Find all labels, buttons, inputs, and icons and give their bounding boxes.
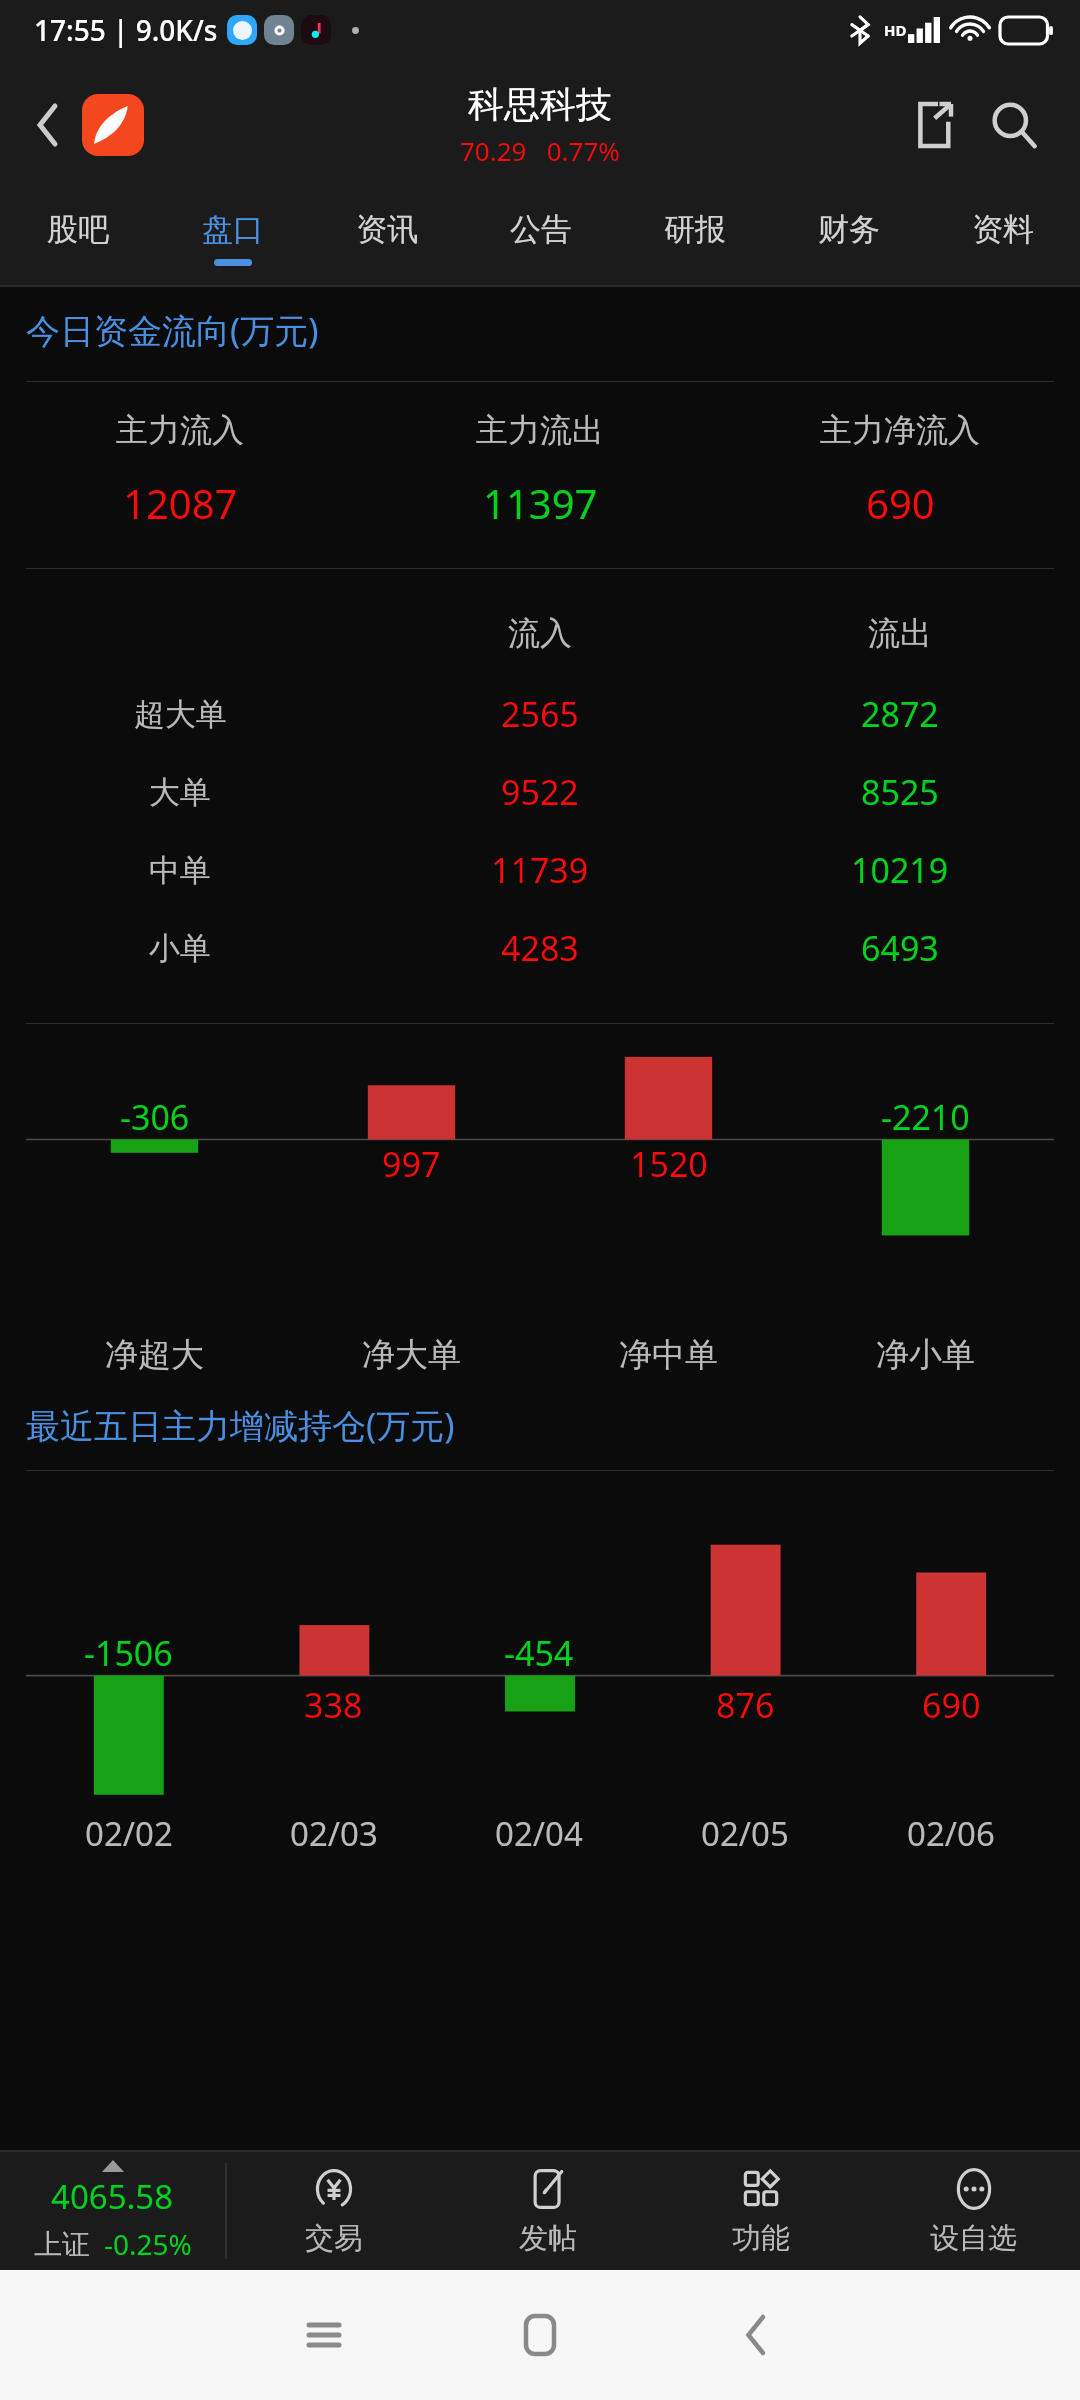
staticText: 大单	[149, 773, 211, 812]
staticText: 876	[716, 1682, 775, 1728]
staticText: 1520	[630, 1141, 708, 1187]
staticText: 4283	[501, 925, 579, 971]
staticText: 上证	[34, 2227, 90, 2262]
staticText: 公告	[510, 210, 572, 249]
button[interactable]: 中单	[0, 831, 1080, 909]
staticText: 研报	[664, 210, 726, 249]
button[interactable]: 股吧	[0, 190, 155, 285]
button[interactable]: Home	[432, 2270, 648, 2400]
button[interactable]: 超大单	[0, 675, 1080, 753]
staticText: 2565	[501, 691, 579, 737]
staticText: 最近五日主力增减持仓(万元)	[26, 1402, 455, 1448]
staticText: 4065.58	[51, 2174, 174, 2219]
staticText: 2872	[861, 691, 939, 737]
button[interactable]: Back	[20, 97, 76, 153]
staticText: 997	[382, 1141, 441, 1187]
button[interactable]: Search	[976, 87, 1052, 163]
staticText: 功能	[732, 2220, 790, 2257]
staticText: 资讯	[356, 210, 418, 249]
staticText: 12087	[123, 476, 238, 530]
button[interactable]: 盘口	[155, 190, 310, 285]
button[interactable]: 功能	[654, 2152, 867, 2270]
button[interactable]: 资料	[926, 190, 1080, 285]
button[interactable]: Back	[648, 2270, 864, 2400]
button[interactable]: 发帖	[441, 2152, 654, 2270]
button[interactable]: 小单	[0, 909, 1080, 987]
button[interactable]: App logo	[82, 94, 144, 156]
staticText: 财务	[818, 210, 880, 249]
staticText: 主力流入	[116, 410, 244, 450]
button[interactable]: 研报	[618, 190, 772, 285]
staticText: 690	[866, 476, 935, 530]
staticText: 02/06	[907, 1811, 995, 1856]
button[interactable]: 交易	[227, 2152, 441, 2270]
staticText: 主力净流入	[820, 410, 980, 450]
button[interactable]: Share	[898, 89, 970, 161]
staticText: 设自选	[930, 2220, 1017, 2257]
staticText: 338	[304, 1682, 363, 1728]
staticText: 流入	[508, 613, 572, 653]
staticText: 02/03	[290, 1811, 378, 1856]
staticText: 流出	[868, 613, 932, 653]
button[interactable]: Recents	[216, 2270, 432, 2400]
staticText: 今日资金流向(万元)	[26, 307, 319, 353]
button[interactable]: 大单	[0, 753, 1080, 831]
staticText: 11397	[483, 476, 598, 530]
staticText: 02/05	[701, 1811, 789, 1856]
staticText: 690	[922, 1682, 981, 1728]
staticText: 净小单	[876, 1334, 975, 1376]
staticText: 02/02	[85, 1811, 173, 1856]
staticText: 盘口	[202, 210, 264, 249]
staticText: 资料	[972, 210, 1034, 249]
staticText: 8525	[861, 769, 939, 815]
staticText: 科思科技	[468, 82, 612, 127]
button[interactable]: 设自选	[867, 2152, 1080, 2270]
staticText: HD	[884, 20, 907, 40]
staticText: 净中单	[619, 1334, 718, 1376]
staticText: -1506	[84, 1630, 173, 1676]
staticText: 9522	[501, 769, 579, 815]
staticText: 超大单	[134, 695, 227, 734]
staticText: -2210	[881, 1094, 970, 1140]
button[interactable]: 公告	[464, 190, 618, 285]
staticText: -0.25%	[104, 2225, 192, 2263]
staticText: 发帖	[519, 2220, 577, 2257]
button[interactable]: 资讯	[310, 190, 464, 285]
staticText: 11739	[491, 847, 589, 893]
staticText: 02/04	[495, 1811, 583, 1856]
staticText: 小单	[149, 929, 211, 968]
staticText: 中单	[149, 851, 211, 890]
staticText: 净超大	[105, 1334, 204, 1376]
button[interactable]: 4065.58	[0, 2152, 225, 2270]
staticText: 10219	[851, 847, 949, 893]
staticText: 17:55 | 9.0K/s	[34, 11, 218, 49]
button[interactable]: 财务	[772, 190, 926, 285]
staticText: 净大单	[362, 1334, 461, 1376]
staticText: 6493	[861, 925, 939, 971]
staticText: -306	[120, 1094, 190, 1140]
staticText: 70.29 0.77%	[460, 133, 620, 168]
staticText: 股吧	[47, 210, 109, 249]
staticText: -454	[504, 1630, 574, 1676]
staticText: 主力流出	[476, 410, 604, 450]
staticText: 交易	[305, 2220, 363, 2257]
